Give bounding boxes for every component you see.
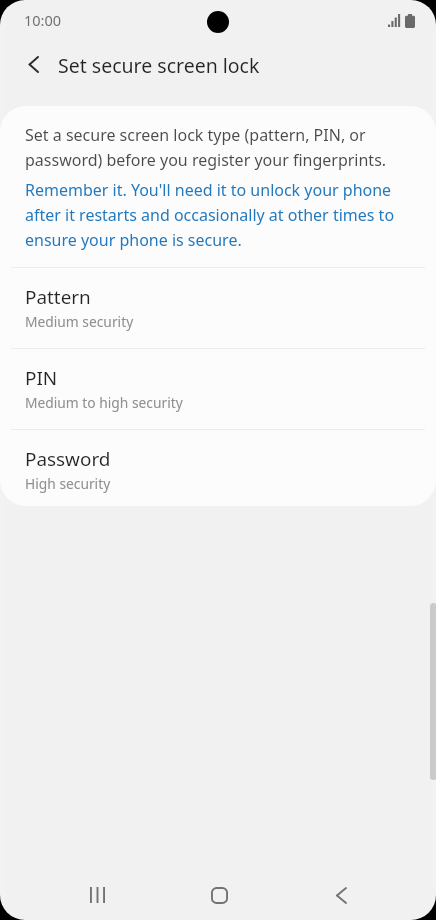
button[interactable]: Navigate up <box>13 44 53 84</box>
staticText: Pattern <box>25 284 91 310</box>
staticText: Remember it. You'll need it to unlock yo… <box>25 177 406 252</box>
button[interactable]: PIN <box>0 349 436 429</box>
staticText: Password <box>25 446 111 472</box>
staticText: PIN <box>25 365 58 391</box>
staticText: 10:00 <box>24 10 62 30</box>
staticText: Set secure screen lock <box>58 52 260 79</box>
button[interactable]: Pattern <box>0 268 436 348</box>
staticText: Medium to high security <box>25 393 183 412</box>
button[interactable]: Recent apps <box>69 867 125 920</box>
button[interactable]: Home <box>191 867 247 920</box>
staticText: Medium security <box>25 312 134 331</box>
staticText: High security <box>25 474 111 493</box>
button[interactable]: Password <box>0 430 436 506</box>
button[interactable]: Back <box>313 867 369 920</box>
staticText: Set a secure screen lock type (pattern, … <box>25 122 402 172</box>
